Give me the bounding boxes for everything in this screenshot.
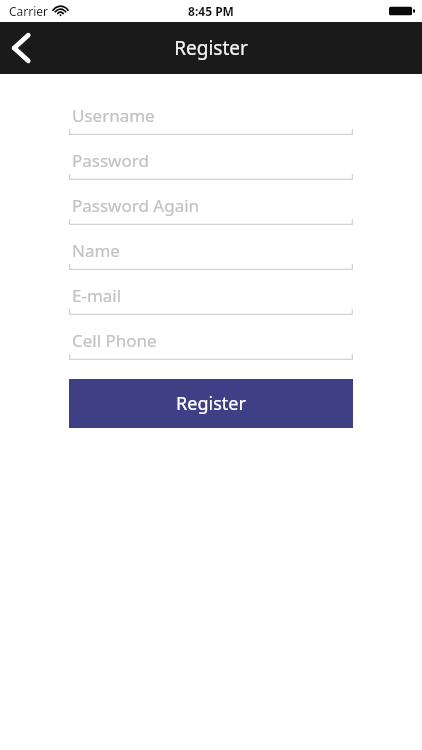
button[interactable]: Back (0, 22, 46, 74)
button[interactable]: E-mail (69, 280, 353, 315)
button[interactable]: Password Again (69, 190, 353, 225)
staticText: Carrier (9, 3, 49, 19)
button[interactable]: Username (69, 100, 353, 135)
staticText: 8:45 PM (188, 3, 234, 19)
staticText: E-mail (72, 284, 122, 307)
button[interactable]: Password (69, 145, 353, 180)
staticText: Register (176, 391, 246, 416)
button[interactable]: Register (69, 379, 353, 428)
button[interactable]: Cell Phone (69, 325, 353, 360)
staticText: Password (72, 149, 149, 172)
staticText: Register (174, 35, 248, 61)
button[interactable]: Name (69, 235, 353, 270)
staticText: Name (72, 239, 120, 262)
staticText: Password Again (72, 194, 200, 217)
staticText: Cell Phone (72, 329, 157, 352)
staticText: Username (72, 104, 155, 127)
